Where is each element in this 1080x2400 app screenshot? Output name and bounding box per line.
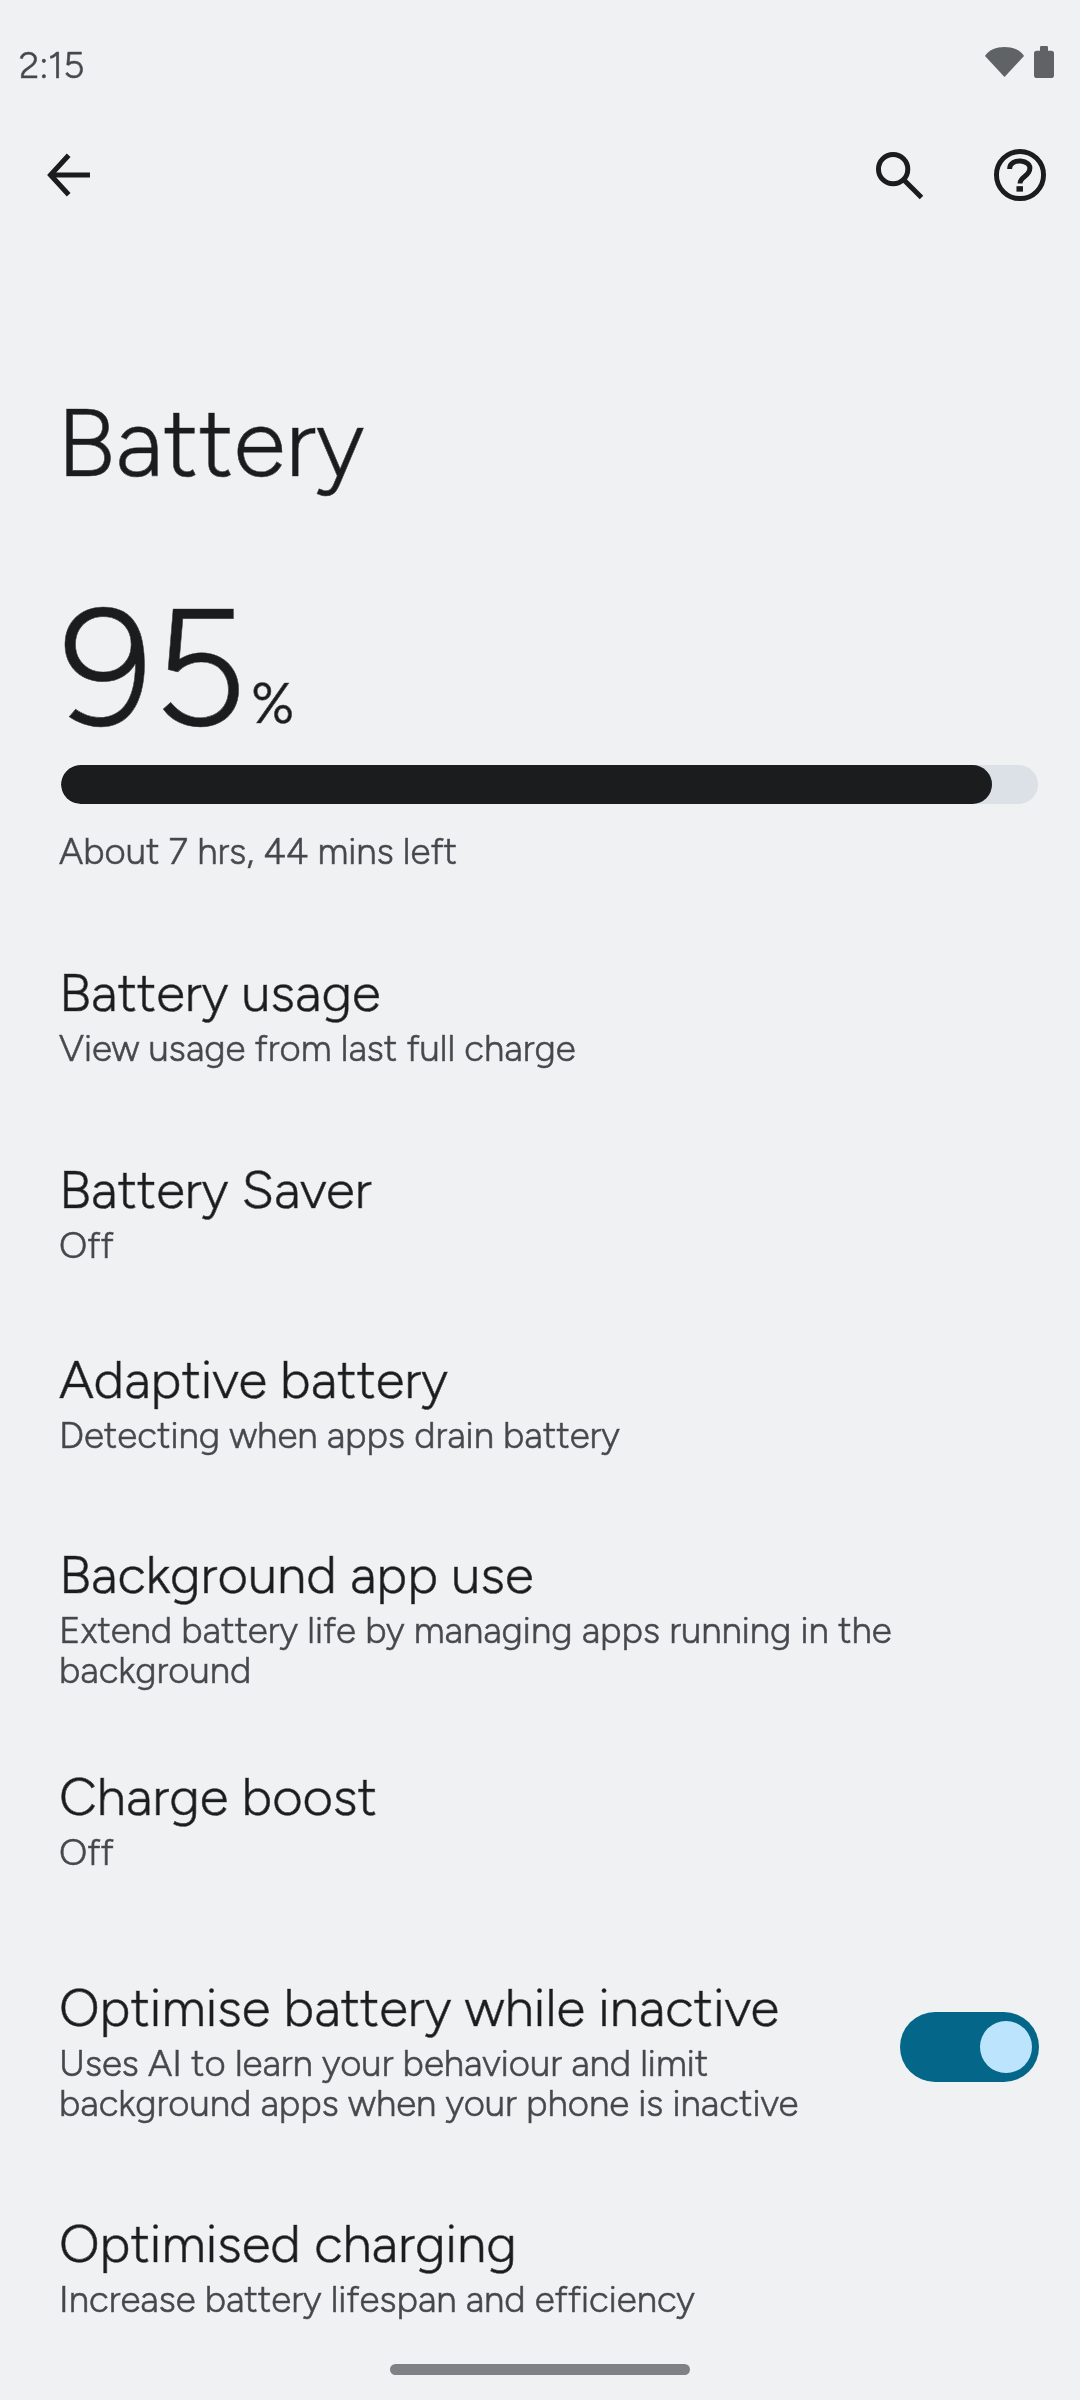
- staticText: %: [251, 670, 295, 737]
- button[interactable]: [0, 1954, 1080, 2150]
- staticText: Optimise battery while inactive: [59, 1976, 780, 2039]
- staticText: Background app use: [59, 1543, 534, 1606]
- staticText: Battery: [57, 385, 365, 500]
- staticText: Charge boost: [59, 1765, 377, 1828]
- staticText: Background app use: [59, 1543, 534, 1606]
- staticText: Charge boost: [59, 1765, 377, 1828]
- staticText: Off: [59, 1223, 114, 1267]
- button[interactable]: Toggle optimise battery while inactive: [900, 2012, 1039, 2082]
- staticText: Adaptive battery: [59, 1348, 448, 1411]
- staticText: 95: [60, 568, 247, 766]
- staticText: Battery usage: [59, 961, 381, 1024]
- button[interactable]: [0, 2190, 1080, 2340]
- staticText: About 7 hrs, 44 mins left: [59, 829, 458, 873]
- staticText: Optimised charging: [59, 2212, 517, 2275]
- staticText: Off: [59, 1830, 114, 1874]
- staticText: 95: [60, 568, 247, 766]
- staticText: Detecting when apps drain battery: [59, 1413, 620, 1457]
- staticText: 2:15: [19, 43, 85, 87]
- staticText: Increase battery lifespan and efficiency: [59, 2277, 695, 2321]
- staticText: 2:15: [19, 43, 85, 87]
- staticText: Battery Saver: [59, 1158, 372, 1221]
- button[interactable]: [0, 1521, 1080, 1717]
- staticText: View usage from last full charge: [59, 1026, 576, 1070]
- staticText: %: [251, 670, 295, 737]
- button[interactable]: [0, 1743, 1080, 1893]
- staticText: View usage from last full charge: [59, 1026, 576, 1070]
- button[interactable]: [0, 939, 1080, 1089]
- staticText: Optimise battery while inactive: [59, 1976, 780, 2039]
- staticText: Increase battery lifespan and efficiency: [59, 2277, 695, 2321]
- staticText: Battery usage: [59, 961, 381, 1024]
- staticText: Battery: [57, 385, 365, 500]
- button[interactable]: Back: [14, 119, 126, 231]
- button[interactable]: [0, 1136, 1080, 1286]
- staticText: Adaptive battery: [59, 1348, 448, 1411]
- staticText: Off: [59, 1830, 114, 1874]
- staticText: Off: [59, 1223, 114, 1267]
- button[interactable]: [0, 1326, 1080, 1476]
- staticText: Extend battery life by managing apps run…: [59, 1608, 899, 1693]
- staticText: Detecting when apps drain battery: [59, 1413, 620, 1457]
- staticText: Battery Saver: [59, 1158, 372, 1221]
- button[interactable]: Search: [844, 120, 956, 232]
- button[interactable]: Help: [964, 119, 1076, 231]
- staticText: Optimised charging: [59, 2212, 517, 2275]
- staticText: Uses AI to learn your behaviour and limi…: [59, 2041, 819, 2126]
- staticText: About 7 hrs, 44 mins left: [59, 829, 458, 873]
- staticText: Uses AI to learn your behaviour and limi…: [59, 2041, 819, 2126]
- staticText: Extend battery life by managing apps run…: [59, 1608, 899, 1693]
